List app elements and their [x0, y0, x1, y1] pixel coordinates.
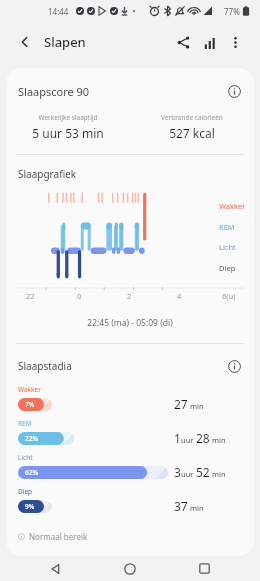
staticText: uur — [181, 469, 196, 479]
staticText: 22 — [26, 291, 35, 301]
staticText: 9% — [25, 502, 35, 511]
staticText: 3 — [174, 464, 181, 480]
staticText: Slaapstadia — [18, 359, 72, 373]
button[interactable]: Share — [170, 29, 196, 55]
staticText: Licht — [219, 242, 236, 252]
staticText: Wakker — [18, 385, 41, 394]
staticText: 62% — [25, 468, 38, 477]
staticText: 527 kcal — [169, 125, 215, 141]
staticText: Verbrande calorieën — [161, 113, 223, 122]
staticText: Licht — [18, 453, 33, 462]
staticText: 77% — [224, 6, 240, 17]
button[interactable]: Home — [112, 556, 148, 581]
staticText: min — [190, 503, 204, 513]
button[interactable]: More options — [222, 29, 248, 55]
button[interactable]: Slaapgrafiek — [6, 155, 254, 343]
staticText: 28 — [196, 430, 210, 446]
staticText: uur — [181, 435, 196, 445]
staticText: 1 — [174, 430, 181, 446]
staticText: 5 uur 53 min — [32, 125, 104, 141]
button[interactable]: Slaapscore 90 — [6, 68, 254, 154]
staticText: 14:44 — [48, 6, 69, 17]
staticText: REM — [219, 222, 235, 232]
staticText: Werkelijke slaaptijd — [38, 113, 98, 122]
staticText: Diep — [18, 487, 33, 496]
staticText: Slaapgrafiek — [18, 167, 77, 181]
staticText: 27 — [174, 396, 188, 412]
staticText: 22:45 (ma) - 05:09 (di) — [6, 317, 254, 329]
staticText: min — [212, 435, 226, 445]
staticText: 4 — [177, 291, 182, 301]
staticText: 22% — [25, 434, 38, 443]
button[interactable]: Diep — [6, 487, 254, 521]
button[interactable]: Recent apps — [186, 556, 222, 581]
staticText: 7% — [25, 400, 35, 409]
staticText: 37 — [174, 498, 188, 514]
button[interactable]: Wakker — [6, 385, 254, 419]
button[interactable]: Licht — [6, 453, 254, 487]
button[interactable]: Slaapstadia — [6, 344, 254, 542]
staticText: 0 — [77, 291, 82, 301]
staticText: Diep — [219, 263, 236, 273]
staticText: REM — [18, 419, 32, 428]
button[interactable]: Info — [224, 81, 244, 101]
staticText: 6(u) — [222, 291, 236, 301]
staticText: min — [212, 469, 226, 479]
staticText: min — [190, 401, 204, 411]
staticText: 2 — [127, 291, 132, 301]
button[interactable]: REM — [6, 419, 254, 453]
staticText: Slapen — [44, 33, 86, 51]
button[interactable]: Back — [38, 556, 74, 581]
staticText: Normaal bereik — [29, 531, 88, 542]
staticText: 52 — [196, 464, 210, 480]
button[interactable]: Info — [224, 356, 244, 376]
staticText: Slaapscore 90 — [18, 84, 90, 99]
staticText: Wakker — [219, 201, 246, 211]
button[interactable]: Back — [12, 29, 38, 55]
button[interactable]: Statistics — [196, 29, 222, 55]
